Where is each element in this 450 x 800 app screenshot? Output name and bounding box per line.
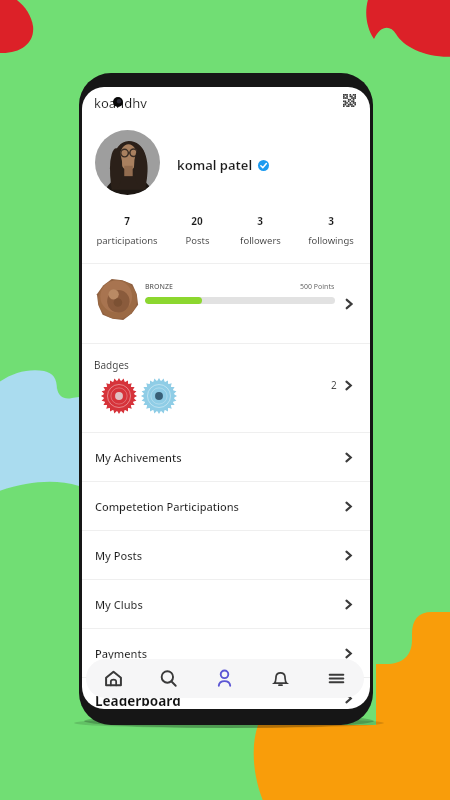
staticText: Payments (95, 646, 147, 661)
staticText: 20 (191, 214, 203, 228)
staticText: komal patel (177, 156, 253, 174)
button[interactable]: QR code (343, 94, 356, 107)
button[interactable]: BRONZE (82, 264, 370, 343)
button[interactable]: My Clubs (82, 580, 370, 628)
button[interactable]: 7 (85, 214, 168, 247)
staticText: 500 Points (300, 282, 335, 292)
staticText: 3 (328, 214, 334, 228)
staticText: Posts (185, 234, 210, 247)
staticText: Leaderboard (95, 692, 181, 709)
button[interactable]: Payments (82, 629, 370, 677)
staticText: followings (308, 234, 354, 247)
button[interactable]: Profile (196, 659, 252, 698)
button[interactable]: Leaderboard (82, 678, 370, 709)
staticText: participations (96, 234, 158, 247)
staticText: 2 (331, 378, 337, 392)
button[interactable]: Search (141, 659, 196, 698)
staticText: 7 (124, 214, 130, 228)
button[interactable]: Menu (308, 659, 364, 698)
button[interactable]: 3 (226, 214, 294, 247)
staticText: 3 (257, 214, 263, 228)
staticText: My Achivements (95, 450, 182, 465)
button[interactable]: 20 (168, 214, 226, 247)
staticText: My Clubs (95, 597, 143, 612)
button[interactable]: 3 (294, 214, 367, 247)
staticText: Badges (94, 358, 129, 372)
button[interactable]: Badges (82, 344, 370, 432)
button[interactable]: Competetion Participations (82, 482, 370, 530)
staticText: koandhv (94, 94, 147, 112)
staticText: BRONZE (145, 282, 173, 292)
staticText: My Posts (95, 548, 143, 563)
staticText: Competetion Participations (95, 499, 239, 514)
button[interactable]: My Posts (82, 531, 370, 579)
button[interactable]: Home (86, 659, 141, 698)
button[interactable]: My Achivements (82, 433, 370, 481)
button[interactable]: Notifications (252, 659, 308, 698)
staticText: followers (240, 234, 281, 247)
